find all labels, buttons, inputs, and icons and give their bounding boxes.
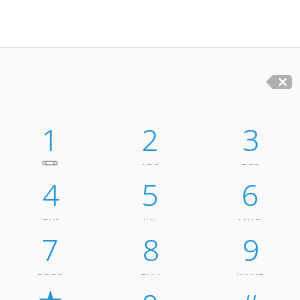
staticText: # — [240, 284, 260, 300]
button[interactable]: 7 — [0, 220, 100, 275]
staticText: 1 — [41, 119, 59, 160]
staticText: 4 — [42, 174, 60, 215]
button[interactable]: 3 — [200, 110, 300, 165]
staticText: PQRS — [37, 271, 63, 275]
staticText: 0 — [141, 284, 159, 300]
button[interactable]: 8 — [100, 220, 200, 275]
staticText: MNO — [238, 216, 262, 220]
staticText: 6 — [241, 174, 259, 215]
staticText: WXYZ — [237, 271, 264, 275]
staticText: 8 — [142, 229, 160, 270]
button[interactable]: # — [200, 275, 300, 300]
staticText: TUV — [141, 271, 160, 275]
button[interactable]: 4 — [0, 165, 100, 220]
button[interactable]: 6 — [200, 165, 300, 220]
button[interactable]: 5 — [100, 165, 200, 220]
staticText: GHI — [41, 216, 60, 220]
staticText: 3 — [242, 119, 260, 160]
staticText: JKL — [143, 216, 158, 220]
staticText: 2 — [141, 119, 159, 160]
button[interactable]: 1 — [0, 110, 100, 165]
staticText: ABC — [140, 161, 160, 165]
staticText: ★ — [37, 284, 64, 300]
staticText: DEF — [241, 161, 260, 165]
staticText: 7 — [41, 229, 59, 270]
button[interactable]: ★ — [0, 275, 100, 300]
button[interactable]: 0 — [100, 275, 200, 300]
button[interactable]: 9 — [200, 220, 300, 275]
button[interactable]: 2 — [100, 110, 200, 165]
staticText: 9 — [242, 229, 260, 270]
button[interactable]: Delete — [258, 68, 300, 96]
staticText: 5 — [141, 174, 159, 215]
